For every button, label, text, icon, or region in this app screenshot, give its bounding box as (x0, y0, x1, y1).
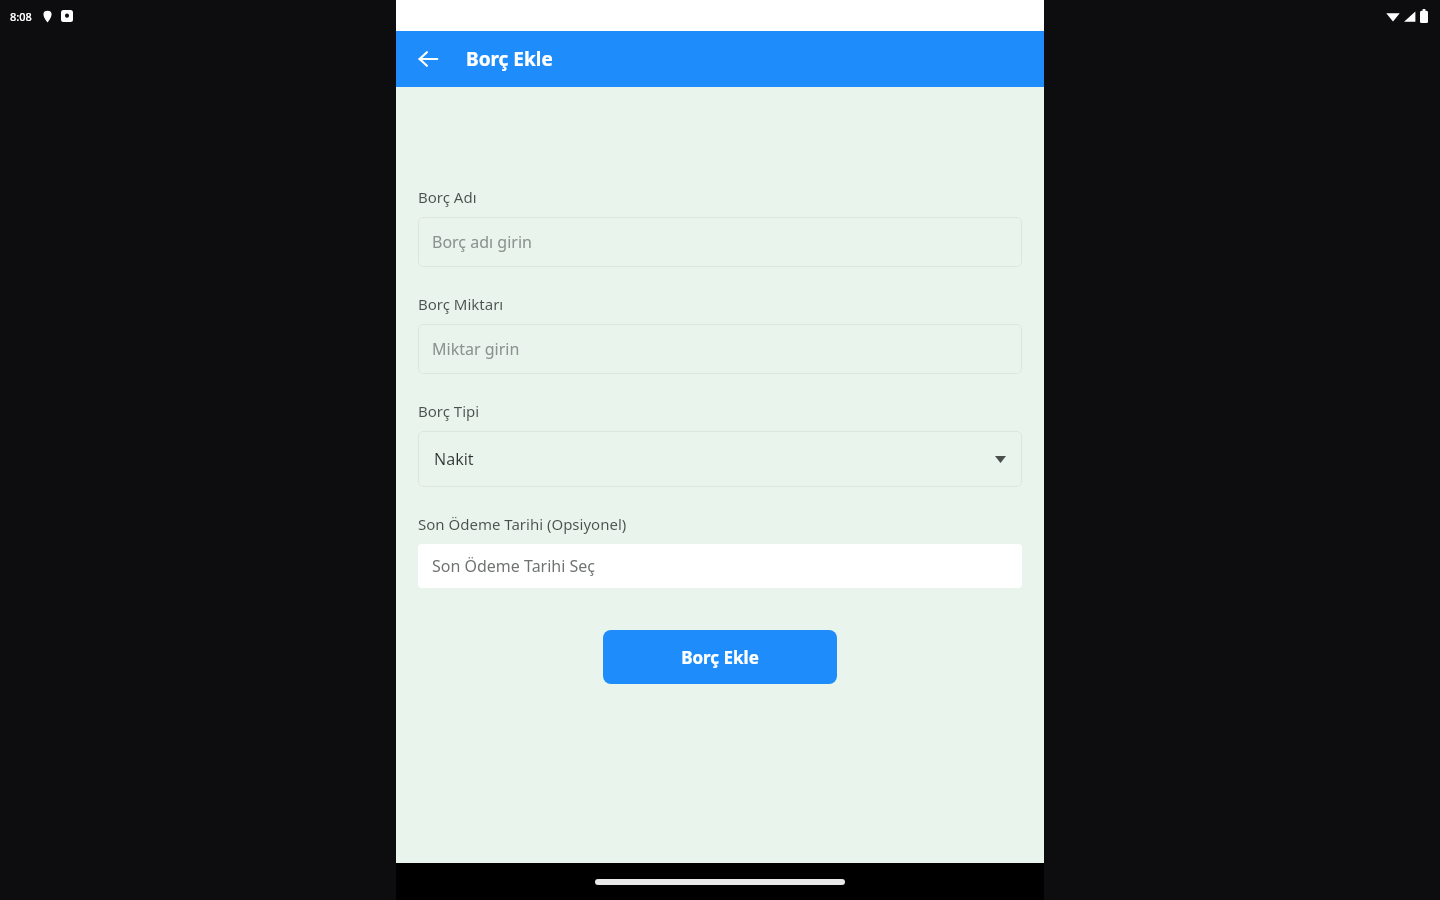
button[interactable]: Borç Ekle (603, 630, 837, 684)
staticText: Miktar girin (432, 338, 520, 360)
staticText: Borç Ekle (466, 46, 553, 72)
staticText: Borç adı girin (432, 231, 532, 253)
staticText: Borç Tipi (418, 401, 480, 421)
staticText: Nakit (434, 448, 474, 470)
button[interactable]: Miktar girin (418, 324, 1022, 374)
staticText: Son Ödeme Tarihi Seç (432, 555, 596, 577)
staticText: 8:08 (10, 9, 32, 24)
staticText: Borç Ekle (681, 646, 759, 669)
staticText: Borç Adı (418, 187, 477, 207)
staticText: Son Ödeme Tarihi (Opsiyonel) (418, 514, 627, 534)
button[interactable]: Borç adı girin (418, 217, 1022, 267)
staticText: Borç Miktarı (418, 294, 504, 314)
button[interactable]: Son Ödeme Tarihi Seç (418, 544, 1022, 588)
button[interactable]: Nakit (418, 431, 1022, 487)
button[interactable]: Back (408, 39, 448, 79)
